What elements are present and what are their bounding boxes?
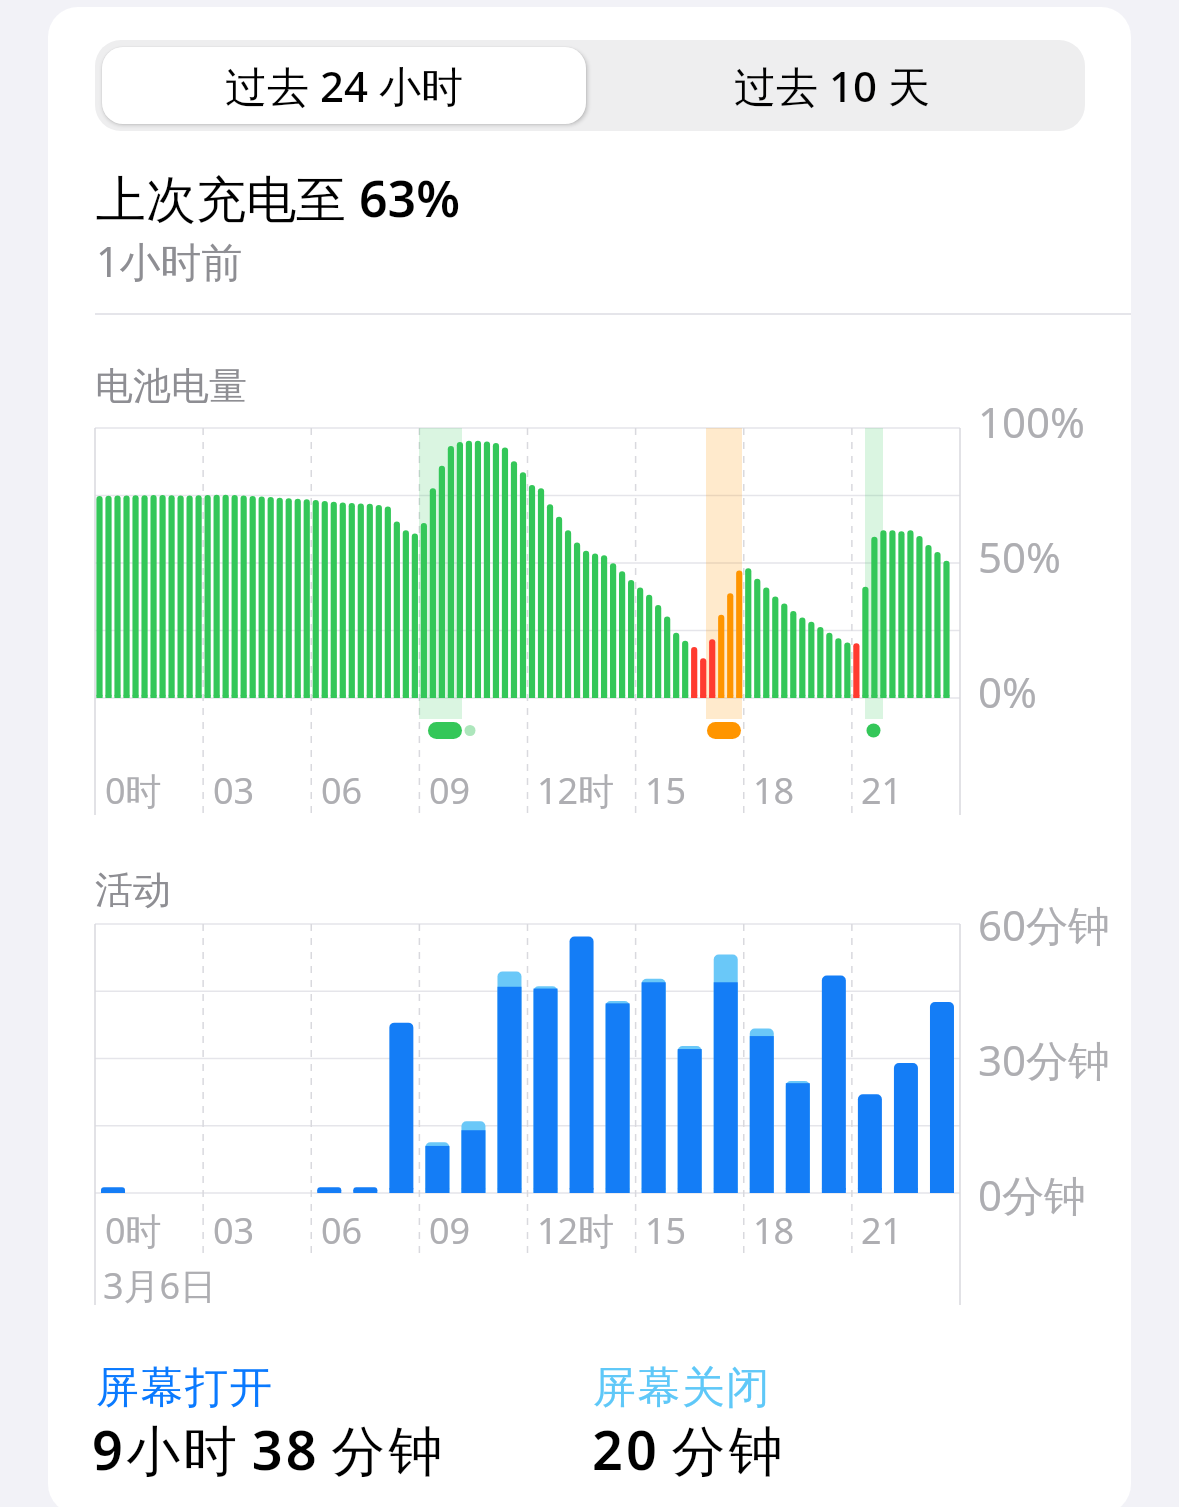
staticText: 过去 24 小时 [225, 57, 463, 114]
button[interactable]: 屏幕关闭 [592, 1361, 770, 1415]
staticText: 屏幕打开 [95, 1361, 273, 1415]
staticText: 15 [645, 1206, 687, 1255]
staticText: 09 [429, 766, 471, 815]
staticText: 50% [978, 528, 1061, 585]
staticText: 9小时 38 分钟 [92, 1412, 446, 1486]
staticText: 12时 [537, 1206, 615, 1255]
staticText: 06 [321, 766, 363, 815]
staticText: 18 [753, 766, 795, 815]
staticText: 电池电量 [95, 362, 247, 410]
staticText: 30分钟 [978, 1031, 1111, 1088]
staticText: 100% [978, 393, 1085, 450]
staticText: 1小时前 [96, 233, 243, 289]
staticText: 3月6日 [103, 1261, 217, 1310]
staticText: 18 [753, 1206, 795, 1255]
staticText: 上次充电至 63% [96, 164, 460, 232]
staticText: 03 [213, 1206, 255, 1255]
staticText: 03 [213, 766, 255, 815]
staticText: 0% [978, 663, 1037, 720]
staticText: 60分钟 [978, 896, 1111, 953]
staticText: 过去 10 天 [734, 57, 930, 114]
staticText: 20 分钟 [592, 1412, 786, 1486]
staticText: 屏幕关闭 [592, 1361, 770, 1415]
staticText: 12时 [537, 766, 615, 815]
button[interactable]: 过去 10 天 [586, 47, 1077, 124]
staticText: 0分钟 [978, 1166, 1087, 1223]
staticText: 活动 [95, 866, 171, 914]
staticText: 09 [429, 1206, 471, 1255]
staticText: 15 [645, 766, 687, 815]
staticText: 21 [861, 766, 903, 815]
staticText: 21 [861, 1206, 903, 1255]
button[interactable]: 过去 24 小时 [102, 47, 586, 124]
staticText: 0时 [105, 1206, 162, 1255]
button[interactable]: 屏幕打开 [95, 1361, 273, 1415]
staticText: 0时 [105, 766, 162, 815]
staticText: 06 [321, 1206, 363, 1255]
